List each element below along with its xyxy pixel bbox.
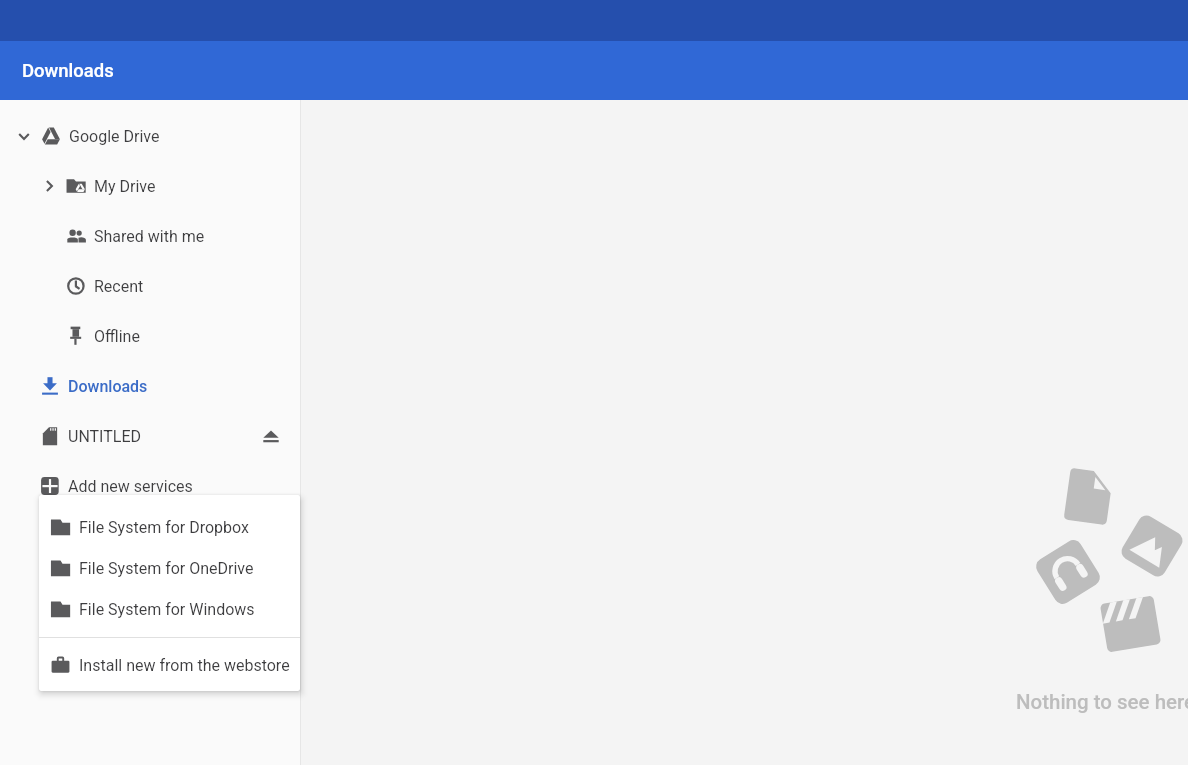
button[interactable]: File System for Windows [39,589,300,630]
button[interactable]: File System for Dropbox [39,507,300,548]
button[interactable]: Expand My Drive [35,161,63,211]
button[interactable]: Recent [0,261,300,311]
button[interactable]: Expand My Drive [0,161,300,211]
button[interactable]: Add new services [0,461,300,511]
staticText: File System for Windows [79,600,255,619]
button[interactable]: Collapse Google Drive [0,111,300,161]
button[interactable]: Eject [251,416,291,456]
button[interactable]: Shared with me [0,211,300,261]
staticText: UNTITLED [68,427,141,446]
button[interactable]: UNTITLED [0,411,300,461]
staticText: Offline [94,327,140,346]
staticText: Downloads [22,60,114,82]
staticText: File System for OneDrive [79,559,254,578]
staticText: Nothing to see here [1016,690,1188,714]
button[interactable]: Offline [0,311,300,361]
button[interactable]: Downloads [0,361,300,411]
staticText: Google Drive [69,127,160,146]
staticText: My Drive [94,177,156,196]
staticText: Downloads [68,377,148,396]
button[interactable]: Install new from the webstore [39,645,300,686]
button[interactable]: Collapse Google Drive [10,111,38,161]
staticText: Shared with me [94,227,205,246]
button[interactable]: File System for OneDrive [39,548,300,589]
staticText: Install new from the webstore [79,656,290,675]
staticText: File System for Dropbox [79,518,249,537]
staticText: Add new services [68,477,193,496]
staticText: Recent [94,277,144,296]
